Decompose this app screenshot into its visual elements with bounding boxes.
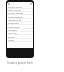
- staticText: Notes: [8, 39, 15, 42]
- staticText: Create a patient form: [4, 61, 36, 65]
- staticText: Symptoms: [8, 22, 19, 25]
- staticText: Doctor: [8, 36, 15, 39]
- button[interactable]: Menu: [8, 3, 10, 5]
- button[interactable]: Patient name: [7, 6, 33, 9]
- button[interactable]: Phone number: [7, 12, 33, 15]
- button[interactable]: Symptoms: [7, 22, 33, 25]
- staticText: Allergies: [8, 29, 17, 32]
- staticText: Medication: [8, 26, 20, 29]
- button[interactable]: Last visit: [7, 32, 33, 35]
- button[interactable]: Insurance ID: [7, 19, 33, 22]
- button[interactable]: Doctor: [7, 36, 33, 39]
- staticText: Insurance ID: [8, 19, 22, 22]
- staticText: Last visit: [8, 32, 17, 35]
- staticText: Date of birth: [8, 9, 22, 12]
- button[interactable]: Allergies: [7, 29, 33, 32]
- staticText: Phone number: [8, 12, 24, 15]
- staticText: Home address: [8, 16, 23, 19]
- button[interactable]: Notes: [7, 39, 33, 42]
- button[interactable]: More options: [30, 3, 32, 5]
- button[interactable]: Home address: [7, 16, 33, 19]
- button[interactable]: Medication: [7, 26, 33, 29]
- staticText: Patient name: [8, 6, 22, 9]
- button[interactable]: Date of birth: [7, 9, 33, 12]
